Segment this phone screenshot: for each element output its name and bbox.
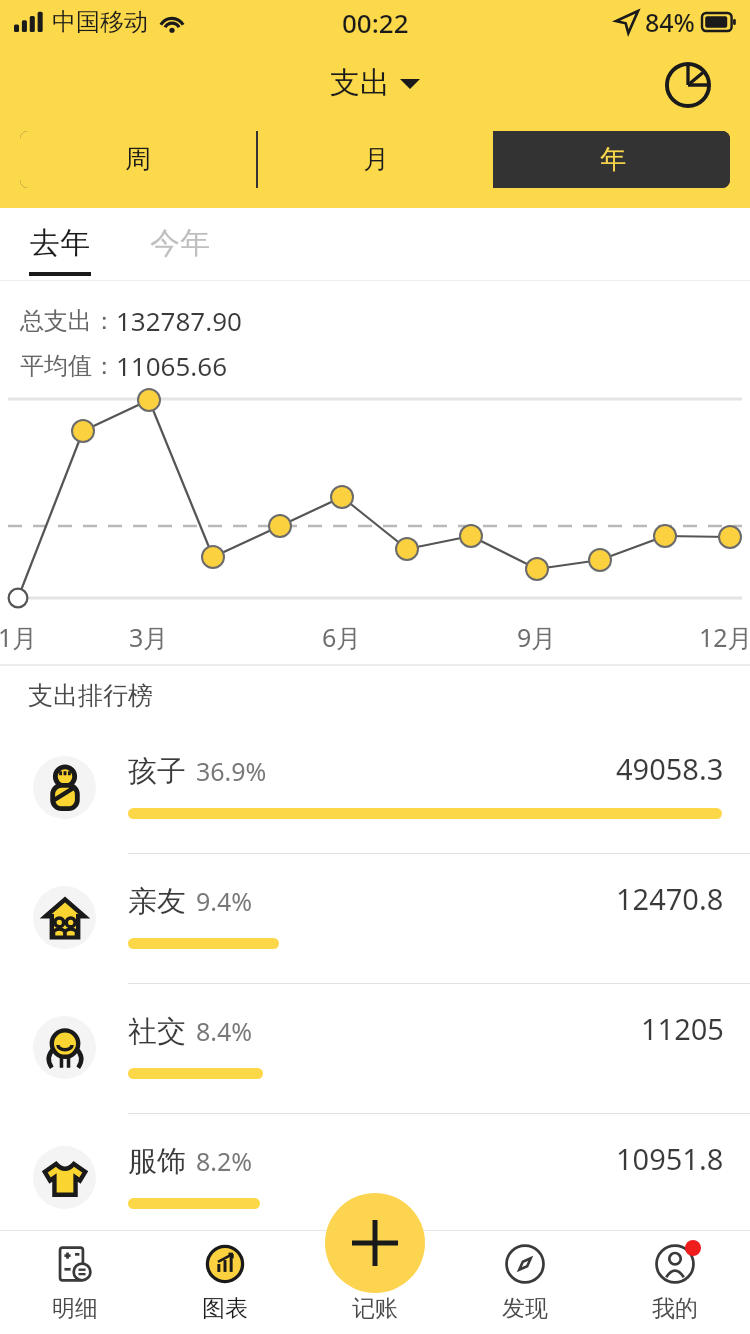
staticText: 11205 <box>641 1009 724 1048</box>
button[interactable]: Add record <box>325 1193 425 1293</box>
button[interactable]: 月 <box>258 131 493 188</box>
staticText: 12470.8 <box>616 879 724 918</box>
button[interactable]: 服饰 <box>0 1114 750 1244</box>
staticText: 明细 <box>52 1294 98 1323</box>
staticText: 9.4% <box>196 884 253 918</box>
staticText: 发现 <box>502 1294 548 1323</box>
staticText: 亲友 <box>128 883 186 920</box>
staticText: 49058.3 <box>616 749 724 788</box>
staticText: 去年 <box>30 224 90 262</box>
staticText: 9月 <box>517 620 557 654</box>
staticText: 平均值： <box>20 351 116 381</box>
staticText: 支出 <box>330 64 390 102</box>
staticText: 84% <box>645 5 695 39</box>
button[interactable]: 支出 <box>324 60 426 106</box>
staticText: 8.2% <box>196 1144 253 1178</box>
button[interactable]: 孩子 <box>0 724 750 854</box>
staticText: 服饰 <box>128 1143 186 1180</box>
button[interactable]: Pie chart report <box>660 57 716 113</box>
button[interactable]: 图表 <box>150 1231 300 1334</box>
staticText: 月 <box>363 143 389 176</box>
staticText: 11065.66 <box>116 348 228 383</box>
staticText: 孩子 <box>128 753 186 790</box>
staticText: 132787.90 <box>116 303 242 338</box>
staticText: 00:22 <box>342 5 409 40</box>
staticText: 中国移动 <box>52 7 148 37</box>
staticText: 支出排行榜 <box>28 680 153 711</box>
staticText: 3月 <box>129 620 169 654</box>
button[interactable]: 亲友 <box>0 854 750 984</box>
button[interactable]: 发现 <box>450 1231 600 1334</box>
staticText: 我的 <box>652 1294 698 1323</box>
button[interactable]: 记账 <box>300 1231 450 1334</box>
staticText: 周 <box>125 143 151 176</box>
staticText: 记账 <box>352 1294 398 1323</box>
button[interactable]: 周 <box>20 131 256 188</box>
staticText: 年 <box>600 143 626 176</box>
staticText: 今年 <box>150 224 210 262</box>
button[interactable]: 今年 <box>120 208 240 280</box>
staticText: 1月 <box>0 620 38 654</box>
button[interactable]: 明细 <box>0 1231 150 1334</box>
button[interactable]: 去年 <box>0 208 120 280</box>
staticText: 社交 <box>128 1013 186 1050</box>
staticText: 10951.8 <box>616 1139 724 1178</box>
button[interactable]: 社交 <box>0 984 750 1114</box>
staticText: 8.4% <box>196 1014 253 1048</box>
staticText: 总支出： <box>20 306 116 336</box>
staticText: 12月 <box>699 620 750 654</box>
button[interactable]: 年 <box>495 131 730 188</box>
staticText: 36.9% <box>196 754 267 788</box>
button[interactable]: 我的 <box>600 1231 750 1334</box>
staticText: 图表 <box>202 1294 248 1323</box>
staticText: 6月 <box>322 620 362 654</box>
